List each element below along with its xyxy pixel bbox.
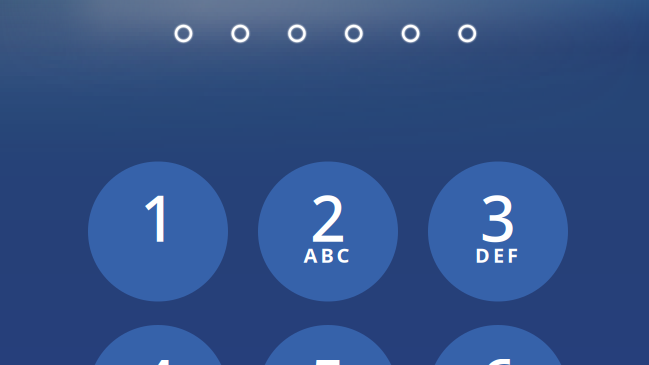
button[interactable]: 5 (258, 325, 398, 365)
staticText: 3 (480, 176, 516, 259)
button[interactable]: 6 (428, 325, 568, 365)
staticText: 2 (310, 176, 346, 259)
staticText: DEF (475, 242, 518, 268)
staticText: 6 (480, 339, 516, 365)
staticText: 5 (310, 339, 346, 365)
button[interactable]: 4 (88, 325, 228, 365)
button[interactable]: 1 (88, 161, 228, 301)
button[interactable]: 3 (428, 161, 568, 301)
staticText: 1 (140, 176, 176, 259)
button[interactable]: 2 (258, 161, 398, 301)
staticText: 4 (140, 339, 176, 365)
staticText: ABC (303, 242, 349, 268)
